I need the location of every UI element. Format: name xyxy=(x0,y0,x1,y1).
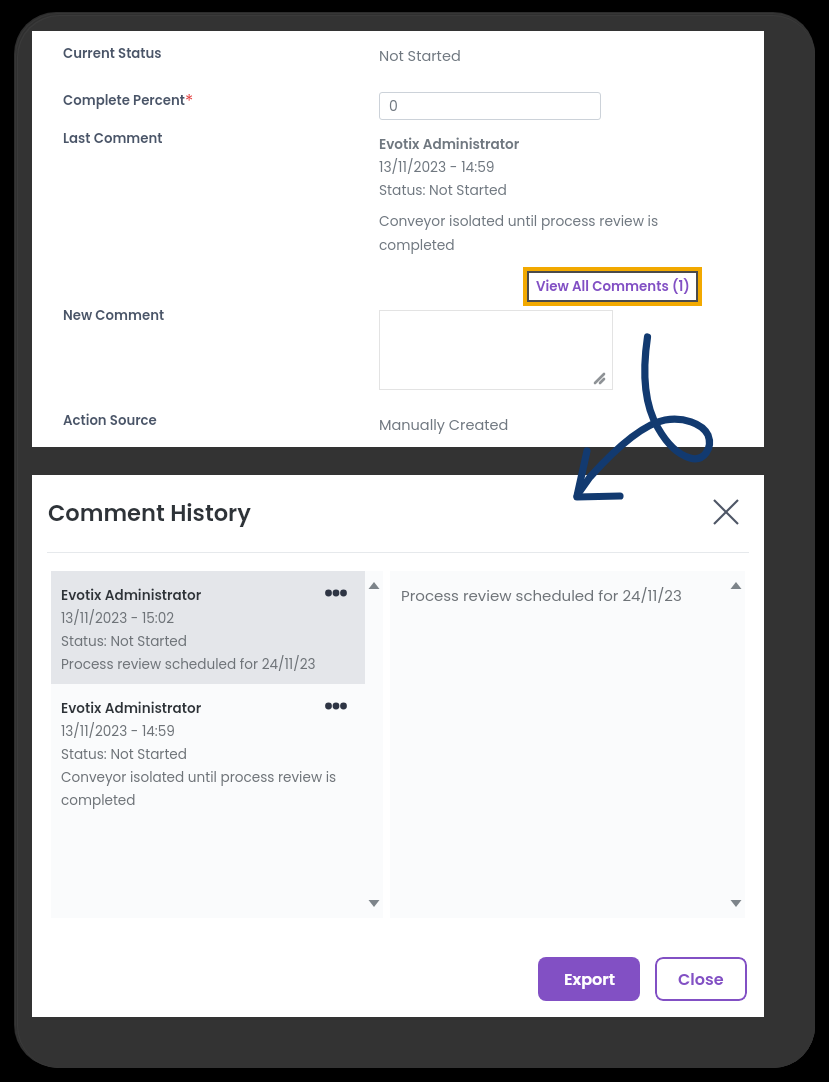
staticText: Evotix Administrator 13/11/2023 - 15:02 … xyxy=(61,586,316,674)
staticText: Evotix Administrator xyxy=(379,135,520,154)
staticText: * xyxy=(185,89,194,113)
button[interactable]: Close xyxy=(655,957,747,1001)
button[interactable]: More options xyxy=(318,580,354,606)
staticText: Comment History xyxy=(48,497,251,529)
staticText: Manually Created xyxy=(379,415,509,435)
staticText: Current Status xyxy=(63,44,162,63)
staticText: Process review scheduled for 24/11/23 xyxy=(401,585,682,606)
button[interactable]: More options xyxy=(318,693,354,719)
staticText: Complete Percent xyxy=(63,91,185,110)
staticText: Not Started xyxy=(379,46,461,66)
button[interactable]: Evotix Administrator 13/11/2023 - 15:02 … xyxy=(51,571,365,684)
staticText: View All Comments (1) xyxy=(536,277,690,296)
staticText: Action Source xyxy=(63,411,157,430)
staticText: Evotix Administrator 13/11/2023 - 14:59 … xyxy=(61,699,337,810)
button[interactable]: Close dialog xyxy=(702,488,750,536)
staticText: Export xyxy=(564,968,615,990)
staticText: 0 xyxy=(389,96,398,116)
button[interactable]: Evotix Administrator 13/11/2023 - 14:59 … xyxy=(51,684,365,820)
staticText: Close xyxy=(678,968,724,990)
button[interactable]: Export xyxy=(538,957,640,1001)
button[interactable]: View All Comments (1) xyxy=(529,273,696,300)
staticText: New Comment xyxy=(63,306,165,325)
staticText: Conveyor isolated until process review i… xyxy=(379,212,659,255)
staticText: Status: Not Started xyxy=(379,181,507,200)
staticText: Last Comment xyxy=(63,129,163,148)
staticText: 13/11/2023 - 14:59 xyxy=(379,158,495,177)
